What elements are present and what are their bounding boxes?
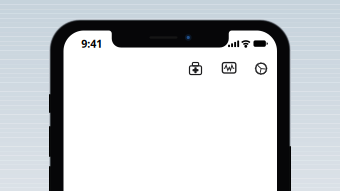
staticText: 9:41 xyxy=(81,36,102,51)
button[interactable]: Activity gauge xyxy=(249,57,273,81)
button[interactable]: First aid kit xyxy=(183,56,207,80)
button[interactable]: Heart rate monitor xyxy=(217,56,241,80)
